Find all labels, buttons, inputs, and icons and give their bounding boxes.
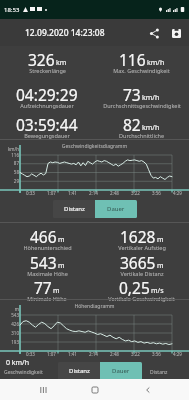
staticText: 73 (123, 84, 141, 105)
staticText: 0:33 (26, 190, 35, 196)
button[interactable]: Save (165, 22, 187, 44)
button[interactable]: Dauer (95, 200, 137, 218)
staticText: m (58, 261, 65, 271)
staticText: m (157, 261, 164, 271)
staticText: km (56, 58, 67, 68)
staticText: 03:59:44 (16, 114, 78, 135)
staticText: 1:07 (47, 351, 56, 357)
staticText: 2:48 (110, 351, 119, 357)
staticText: 116 (119, 49, 146, 70)
staticText: m (2, 306, 19, 312)
staticText: 0,25 (119, 277, 150, 298)
staticText: Durchschnittliche Bewegungsgeschwind. (94, 132, 189, 139)
button[interactable]: Share (143, 22, 165, 44)
staticText: Höhendiagramm (0, 303, 189, 310)
staticText: 1:41 (68, 190, 77, 196)
staticText: 326 (28, 49, 55, 70)
staticText: 1628 (120, 226, 156, 247)
staticText: Vertikale Distanz (120, 270, 164, 277)
staticText: m/s (151, 286, 164, 296)
staticText: Distanz (69, 367, 90, 375)
staticText: 3:56 (152, 351, 161, 357)
staticText: 77 (34, 277, 52, 298)
staticText: Max. Geschwindigkeit (113, 67, 170, 74)
staticText: 18:53 (4, 6, 20, 14)
staticText: 3:56 (152, 190, 161, 196)
button[interactable]: Back (137, 379, 158, 400)
staticText: Durchschnittsgeschwindigkeit (103, 102, 181, 109)
staticText: 193 (2, 339, 19, 345)
staticText: 1:41 (68, 351, 77, 357)
staticText: 1:07 (47, 190, 56, 196)
staticText: m (53, 286, 60, 296)
staticText: m (157, 235, 164, 245)
staticText: Aufzeichnungsdauer (20, 102, 74, 109)
staticText: km/h (2, 146, 19, 152)
staticText: 426 (2, 321, 19, 327)
staticText: Geschwindigkeitsdiagramm (0, 143, 189, 150)
staticText: 12.09.2020 14:23:08 (25, 27, 143, 39)
staticText: 2:14 (89, 351, 98, 357)
staticText: km/h (142, 123, 160, 133)
staticText: 2:48 (110, 190, 119, 196)
staticText: km/h (147, 58, 165, 68)
staticText: 116 (2, 152, 19, 158)
button[interactable]: Recents (32, 379, 53, 400)
staticText: Geschwindigkeit (4, 369, 43, 376)
staticText: 3:22 (131, 190, 140, 196)
staticText: Maximale Höhe (27, 270, 68, 277)
staticText: Streckenlänge (29, 67, 66, 74)
staticText: 58 (2, 169, 19, 175)
staticText: Dauer (107, 205, 125, 213)
button[interactable]: Distanz (58, 362, 100, 380)
staticText: 310 (2, 330, 19, 336)
staticText: 0:33 (26, 351, 35, 357)
staticText: Bewegungsdauer (24, 132, 70, 139)
staticText: 3665 (120, 252, 156, 273)
staticText: 0 km/h (6, 358, 30, 368)
staticText: Distanz (64, 205, 85, 213)
staticText: 543 (30, 252, 57, 273)
staticText: Dauer (112, 367, 130, 375)
staticText: Minimale Höhe (27, 295, 67, 302)
staticText: 3:22 (131, 351, 140, 357)
staticText: Höhenunterschied (23, 244, 72, 251)
staticText: 82 (123, 114, 141, 135)
staticText: 29 (2, 178, 19, 184)
staticText: 466 (30, 226, 57, 247)
button[interactable]: Dauer (100, 362, 142, 380)
staticText: 543 (2, 312, 19, 318)
staticText: Distanz (150, 369, 168, 376)
staticText: 4:29 (173, 190, 182, 196)
staticText: 2:14 (89, 190, 98, 196)
staticText: km/h (142, 93, 160, 103)
button[interactable]: Home (84, 379, 105, 400)
staticText: Vertikale Geschwindigkeit (108, 295, 175, 302)
staticText: 4:29 (173, 351, 182, 357)
staticText: 87 (2, 160, 19, 166)
button[interactable]: Distanz (53, 200, 95, 218)
staticText: m (58, 235, 65, 245)
staticText: 04:29:29 (16, 84, 78, 105)
staticText: Vertikaler Aufstieg (118, 244, 166, 251)
